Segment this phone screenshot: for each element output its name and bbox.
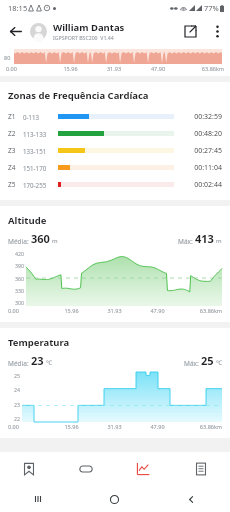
staticText: 25 [201, 353, 214, 368]
button[interactable]: Z3 [8, 142, 222, 159]
staticText: William Dantas [53, 21, 125, 34]
button[interactable]: Z4 [8, 159, 222, 176]
staticText: m [52, 237, 58, 245]
staticText: Z5 [8, 180, 23, 189]
staticText: 24 [14, 386, 20, 393]
button[interactable]: Back [153, 486, 230, 512]
staticText: Média: [8, 237, 29, 246]
staticText: ℃ [216, 359, 222, 367]
staticText: 77% [204, 3, 219, 13]
staticText: 0.00 [8, 307, 50, 314]
staticText: IGPSPORT BSC200 V1.44 [53, 34, 114, 41]
button[interactable]: Saved [0, 452, 57, 486]
staticText: 63.86km [180, 65, 224, 72]
button[interactable]: More options [204, 18, 230, 44]
staticText: Z3 [8, 146, 23, 155]
staticText: 00:02:44 [182, 180, 222, 190]
staticText: 151-170 [23, 164, 58, 172]
staticText: 413 [195, 231, 214, 246]
staticText: Z4 [8, 163, 23, 172]
staticText: Média: [8, 359, 29, 368]
staticText: 63.86km [179, 307, 222, 314]
staticText: 390 [15, 262, 24, 269]
button[interactable]: Share [176, 17, 204, 45]
staticText: 15.96 [50, 307, 93, 314]
staticText: 25 [14, 372, 20, 379]
staticText: 23 [14, 401, 20, 408]
staticText: 31.93 [93, 423, 136, 430]
staticText: 360 [31, 231, 50, 246]
staticText: 15.96 [49, 65, 92, 72]
staticText: Z1 [8, 112, 23, 121]
staticText: 31.93 [93, 307, 136, 314]
staticText: 47.90 [136, 423, 179, 430]
button[interactable]: Home [76, 486, 153, 512]
staticText: 420 [15, 250, 24, 257]
button[interactable]: Charts [114, 452, 172, 486]
staticText: 47.90 [136, 307, 179, 314]
staticText: 00:11:04 [182, 163, 222, 173]
staticText: 18:15 [8, 3, 28, 13]
staticText: 00:32:59 [182, 112, 222, 122]
staticText: 22 [14, 415, 20, 422]
button[interactable]: Activity [57, 452, 114, 486]
staticText: 80 [4, 54, 11, 61]
button[interactable]: Reports [172, 452, 230, 486]
staticText: 00:48:20 [182, 129, 222, 139]
staticText: 0.00 [8, 423, 50, 430]
staticText: 300 [15, 299, 24, 306]
staticText: 0.00 [6, 65, 49, 72]
button[interactable]: Recents [0, 486, 76, 512]
staticText: 0-113 [23, 113, 58, 121]
staticText: 170-255 [23, 181, 58, 189]
staticText: 15.96 [50, 423, 93, 430]
staticText: m [216, 237, 222, 245]
staticText: Temperatura [8, 336, 70, 349]
staticText: 00:27:45 [182, 146, 222, 156]
button[interactable]: Z2 [8, 125, 222, 142]
staticText: Máx: [184, 359, 199, 368]
staticText: 360 [15, 275, 24, 282]
staticText: 31.93 [92, 65, 136, 72]
button[interactable]: Back [0, 16, 30, 46]
button[interactable]: Z1 [8, 108, 222, 125]
staticText: Máx: [178, 237, 193, 246]
staticText: 47.90 [136, 65, 180, 72]
staticText: 23 [31, 353, 44, 368]
staticText: 113-133 [23, 130, 58, 138]
staticText: Z2 [8, 129, 23, 138]
button[interactable]: Z5 [8, 176, 222, 193]
staticText: Altitude [8, 214, 47, 227]
staticText: 330 [15, 287, 24, 294]
staticText: Zonas de Frequência Cardíaca [8, 89, 149, 102]
staticText: 63.86km [179, 423, 222, 430]
staticText: ℃ [46, 359, 52, 367]
staticText: 133-151 [23, 147, 58, 155]
